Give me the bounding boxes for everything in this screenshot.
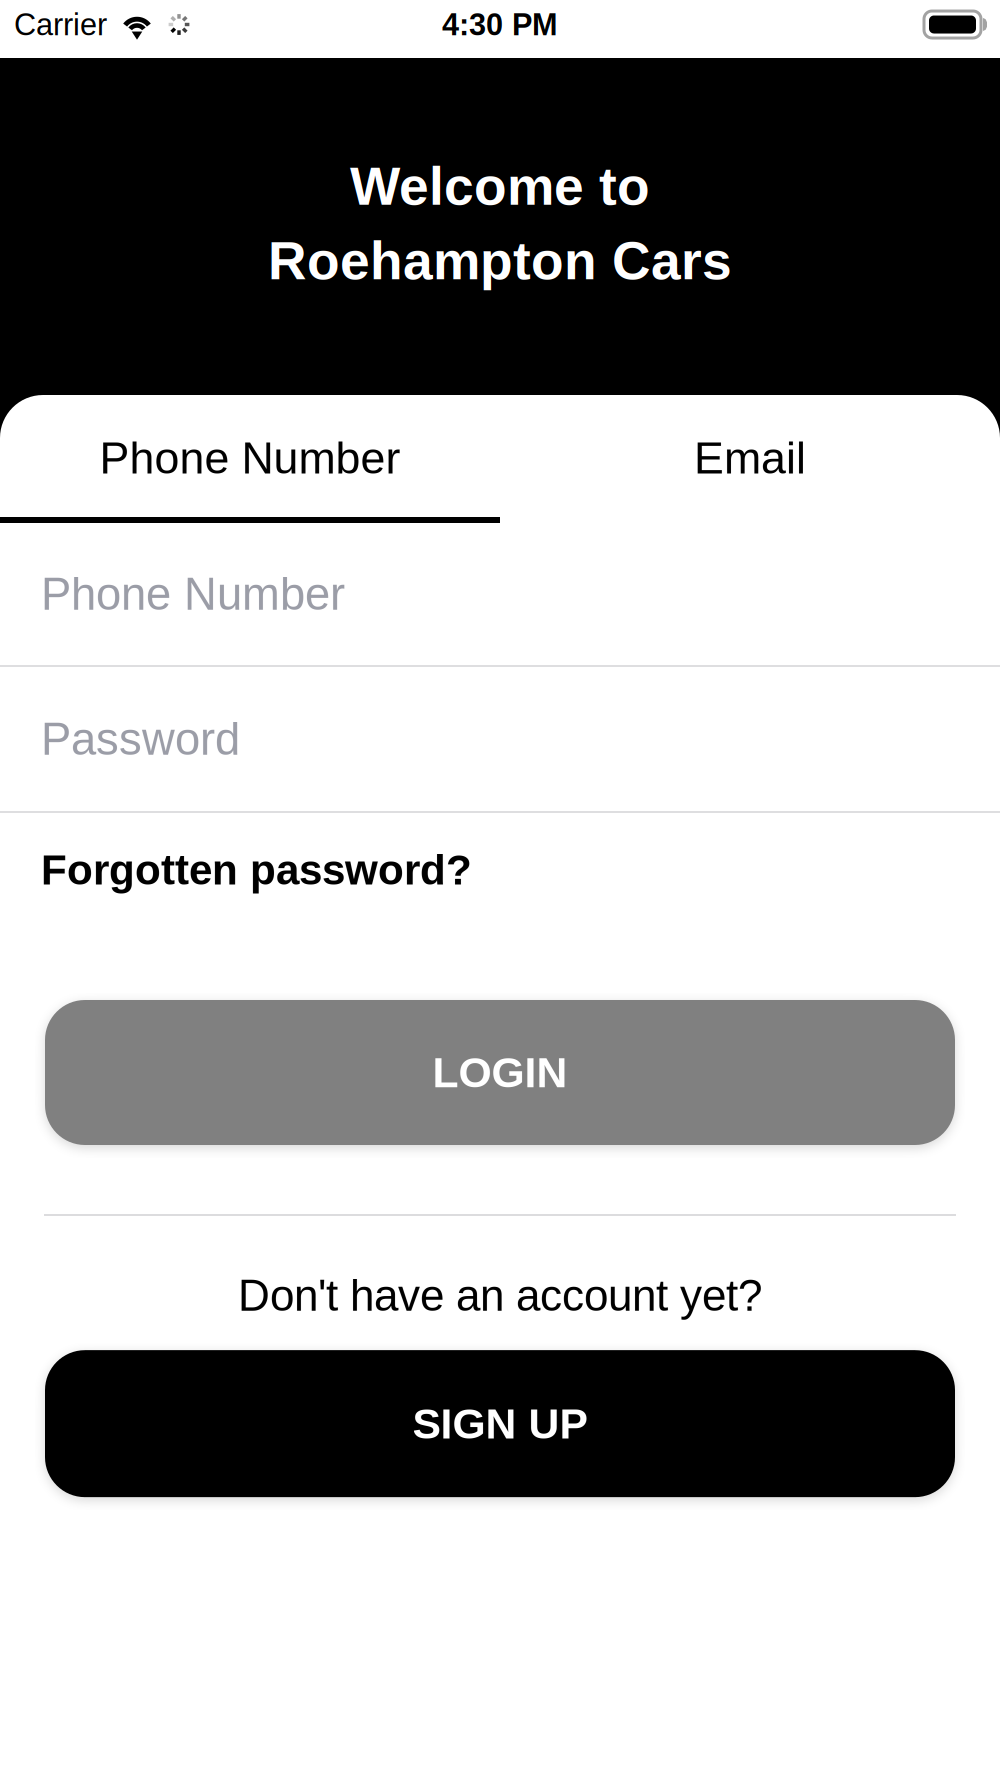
button[interactable]: Email [500, 395, 1000, 523]
staticText: Welcome to [350, 156, 650, 216]
button[interactable]: Password [0, 667, 1000, 813]
staticText: SIGN UP [412, 1400, 587, 1447]
staticText: Phone Number [41, 569, 345, 619]
staticText: Email [694, 433, 806, 483]
staticText: Carrier [14, 7, 107, 42]
staticText: Forgotten password? [41, 846, 472, 894]
button[interactable]: SIGN UP [0, 1350, 1000, 1497]
staticText: Phone Number [99, 433, 400, 483]
staticText: 4:30 PM [442, 7, 558, 42]
staticText: LOGIN [432, 1049, 567, 1096]
button[interactable]: Phone Number [0, 395, 500, 523]
button[interactable]: Forgotten password? [0, 813, 1000, 924]
staticText: Don't have an account yet? [238, 1271, 762, 1320]
staticText: Password [41, 714, 240, 764]
button[interactable]: LOGIN [0, 1000, 1000, 1145]
button[interactable]: Phone Number [0, 523, 1000, 667]
staticText: Roehampton Cars [268, 231, 732, 291]
